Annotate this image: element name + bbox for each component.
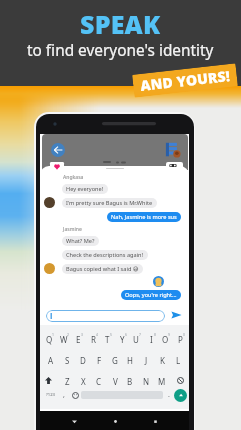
staticText: F <box>97 355 102 366</box>
staticText: B <box>127 376 133 387</box>
button[interactable]: , <box>59 387 69 403</box>
button[interactable]: Back <box>68 415 80 427</box>
staticText: M <box>158 376 166 387</box>
staticText: Oops, you're right... <box>125 291 177 299</box>
button[interactable]: G <box>109 350 121 368</box>
staticText: G <box>112 355 118 366</box>
staticText: Nah, Jasmine is more sus <box>111 213 177 221</box>
staticText: , <box>63 390 65 400</box>
staticText: O <box>162 334 169 345</box>
button[interactable]: Recents <box>149 415 161 427</box>
staticText: What? Me? <box>66 237 95 245</box>
button[interactable]: D <box>77 350 89 368</box>
button[interactable]: Z <box>61 371 73 389</box>
button[interactable]: ?123 <box>42 387 59 403</box>
button[interactable]: 1 <box>43 329 55 347</box>
staticText: E <box>76 334 81 345</box>
button[interactable]: M <box>156 371 168 389</box>
staticText: K <box>160 355 165 366</box>
button[interactable]: C <box>93 371 105 389</box>
button[interactable]: 4 <box>87 329 99 347</box>
button[interactable]: 0 <box>174 329 186 347</box>
button[interactable]: Oops, you're right... <box>125 291 177 299</box>
button[interactable]: . <box>163 387 174 403</box>
staticText: X <box>81 376 86 387</box>
staticText: . <box>168 390 170 400</box>
button[interactable]: Shift <box>40 371 57 389</box>
button[interactable]: AND YOURS! <box>132 63 238 98</box>
button[interactable]: 6 <box>116 329 128 347</box>
staticText: Check the descriptions again! <box>66 251 144 259</box>
staticText: 6 <box>125 332 127 337</box>
staticText: L <box>176 355 181 366</box>
button[interactable]: Nah, Jasmine is more sus <box>111 213 177 221</box>
staticText: 9 <box>168 332 170 337</box>
staticText: 1 <box>52 332 54 337</box>
staticText: Jasmine <box>63 226 82 233</box>
button[interactable]: Emoji <box>69 387 81 403</box>
button[interactable]: 8 <box>145 329 157 347</box>
staticText: 8 <box>154 332 156 337</box>
staticText: to find everyone's identity <box>27 40 214 61</box>
button[interactable] <box>46 310 165 322</box>
button[interactable]: H <box>124 350 136 368</box>
button[interactable]: 3 <box>72 329 84 347</box>
button[interactable]: N <box>140 371 152 389</box>
button[interactable]: V <box>109 371 121 389</box>
staticText: P <box>178 334 183 345</box>
staticText: Bagus copied what I said 😅 <box>66 265 139 273</box>
staticText: N <box>143 376 150 387</box>
button[interactable]: S <box>61 350 73 368</box>
staticText: V <box>113 376 118 387</box>
button[interactable]: 5 <box>101 329 113 347</box>
staticText: ?123 <box>46 392 56 398</box>
button[interactable]: L <box>172 350 184 368</box>
staticText: Angkasa <box>63 174 84 181</box>
staticText: 3 <box>81 332 83 337</box>
button[interactable]: K <box>156 350 168 368</box>
staticText: AND YOURS! <box>139 66 232 95</box>
button[interactable]: Hey everyone! <box>66 185 104 193</box>
staticText: Y <box>120 334 125 345</box>
staticText: S <box>65 355 70 366</box>
staticText: T <box>105 334 110 345</box>
staticText: H <box>127 355 133 366</box>
staticText: Hey everyone! <box>66 185 104 193</box>
staticText: 2 <box>67 332 69 337</box>
staticText: 0 <box>183 332 185 337</box>
button[interactable]: Check the descriptions again! <box>66 251 144 259</box>
button[interactable]: What? Me? <box>66 237 95 245</box>
staticText: R <box>91 334 96 345</box>
staticText: 4 <box>96 332 98 337</box>
staticText: 7 <box>139 332 141 337</box>
button[interactable]: Backspace <box>172 371 189 389</box>
button[interactable]: X <box>77 371 89 389</box>
staticText: Z <box>65 376 70 387</box>
staticText: I <box>150 334 153 345</box>
staticText: U <box>133 334 139 345</box>
button[interactable]: Back <box>51 143 65 157</box>
button[interactable]: 2 <box>58 329 70 347</box>
button[interactable]: A <box>45 350 57 368</box>
button[interactable]: Player roles <box>165 141 183 159</box>
button[interactable]: I'm pretty sure Bagus is Mr.White <box>66 199 153 207</box>
button[interactable]: J <box>140 350 152 368</box>
button[interactable]: F <box>93 350 105 368</box>
button[interactable]: Home <box>109 415 121 427</box>
staticText: I'm pretty sure Bagus is Mr.White <box>66 199 153 207</box>
staticText: D <box>80 355 86 366</box>
staticText: 5 <box>110 332 112 337</box>
button[interactable]: 9 <box>159 329 171 347</box>
staticText: SPEAK <box>80 7 161 41</box>
button[interactable]: Bagus copied what I said 😅 <box>66 265 139 273</box>
staticText: W <box>60 334 68 345</box>
button[interactable]: B <box>124 371 136 389</box>
button[interactable]: 7 <box>130 329 142 347</box>
staticText: A <box>48 355 54 366</box>
staticText: Q <box>46 334 53 345</box>
staticText: J <box>145 355 148 366</box>
button[interactable]: Enter <box>174 389 187 402</box>
staticText: C <box>96 376 102 387</box>
button[interactable]: Send message <box>169 309 184 320</box>
